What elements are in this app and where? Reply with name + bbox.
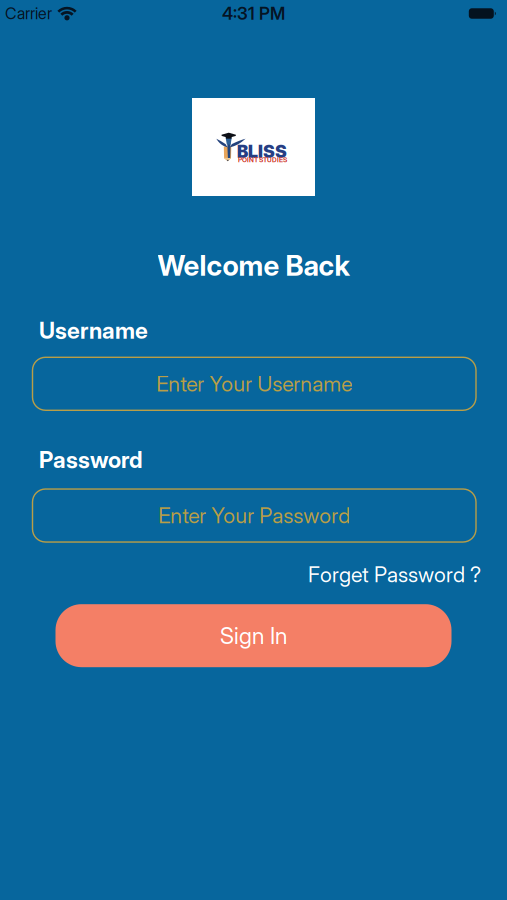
staticText: Forget Password ?: [308, 562, 481, 587]
button[interactable]: Enter Your Username: [32, 357, 476, 410]
staticText: Welcome Back: [157, 249, 349, 282]
staticText: Sign In: [220, 622, 287, 649]
button[interactable]: Sign In: [55, 604, 451, 667]
staticText: 4:31 PM: [222, 3, 285, 24]
staticText: POINT STUDIES: [238, 156, 287, 164]
staticText: Enter Your Password: [158, 503, 350, 528]
staticText: Username: [39, 317, 148, 344]
staticText: Carrier: [5, 4, 52, 23]
staticText: Password: [39, 446, 143, 473]
staticText: BLISS: [237, 141, 287, 162]
staticText: Enter Your Username: [156, 371, 352, 396]
button[interactable]: Forget Password ?: [308, 562, 481, 587]
button[interactable]: Enter Your Password: [32, 489, 476, 542]
